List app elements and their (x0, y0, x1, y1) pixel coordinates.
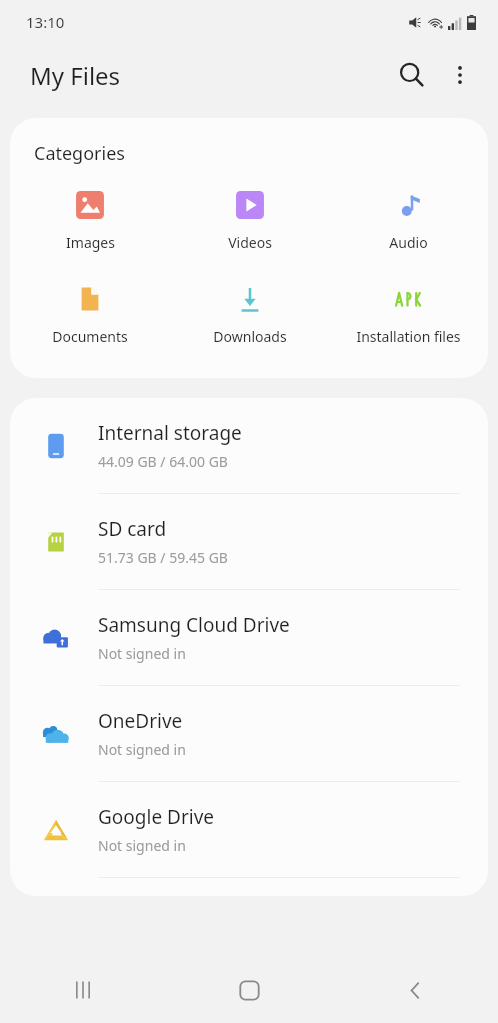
staticText: 51.73 GB / 59.45 GB (98, 548, 228, 567)
button[interactable]: Home (166, 957, 332, 1023)
button[interactable]: Downloads (170, 282, 329, 348)
staticText: My Files (30, 59, 121, 92)
staticText: Not signed in (98, 836, 186, 855)
button[interactable]: Search (388, 51, 436, 99)
staticText: Not signed in (98, 740, 186, 759)
staticText: Images (66, 233, 115, 252)
button[interactable]: Samsung Cloud Drive (10, 590, 488, 685)
button[interactable]: Audio (329, 188, 488, 254)
staticText: Downloads (213, 327, 287, 346)
staticText: Not signed in (98, 644, 186, 663)
button[interactable]: Documents (10, 282, 170, 348)
button[interactable]: OneDrive (10, 686, 488, 781)
staticText: Videos (228, 233, 272, 252)
staticText: Google Drive (98, 804, 215, 830)
staticText: OneDrive (98, 708, 183, 734)
button[interactable]: Installation files (329, 282, 488, 348)
staticText: 13:10 (26, 12, 65, 32)
staticText: Categories (34, 141, 125, 166)
button[interactable]: SD card (10, 494, 488, 589)
button[interactable]: More options (436, 51, 484, 99)
staticText: 44.09 GB / 64.00 GB (98, 452, 228, 471)
button[interactable]: Videos (170, 188, 329, 254)
staticText: Audio (389, 233, 428, 252)
staticText: Samsung Cloud Drive (98, 612, 290, 638)
staticText: Documents (52, 327, 128, 346)
button[interactable]: Back (332, 957, 498, 1023)
staticText: Installation files (356, 327, 461, 346)
staticText: Internal storage (98, 420, 242, 446)
button[interactable]: Internal storage (10, 398, 488, 493)
button[interactable]: Recents (0, 957, 166, 1023)
button[interactable]: Images (10, 188, 170, 254)
button[interactable]: Google Drive (10, 782, 488, 877)
staticText: SD card (98, 516, 167, 542)
